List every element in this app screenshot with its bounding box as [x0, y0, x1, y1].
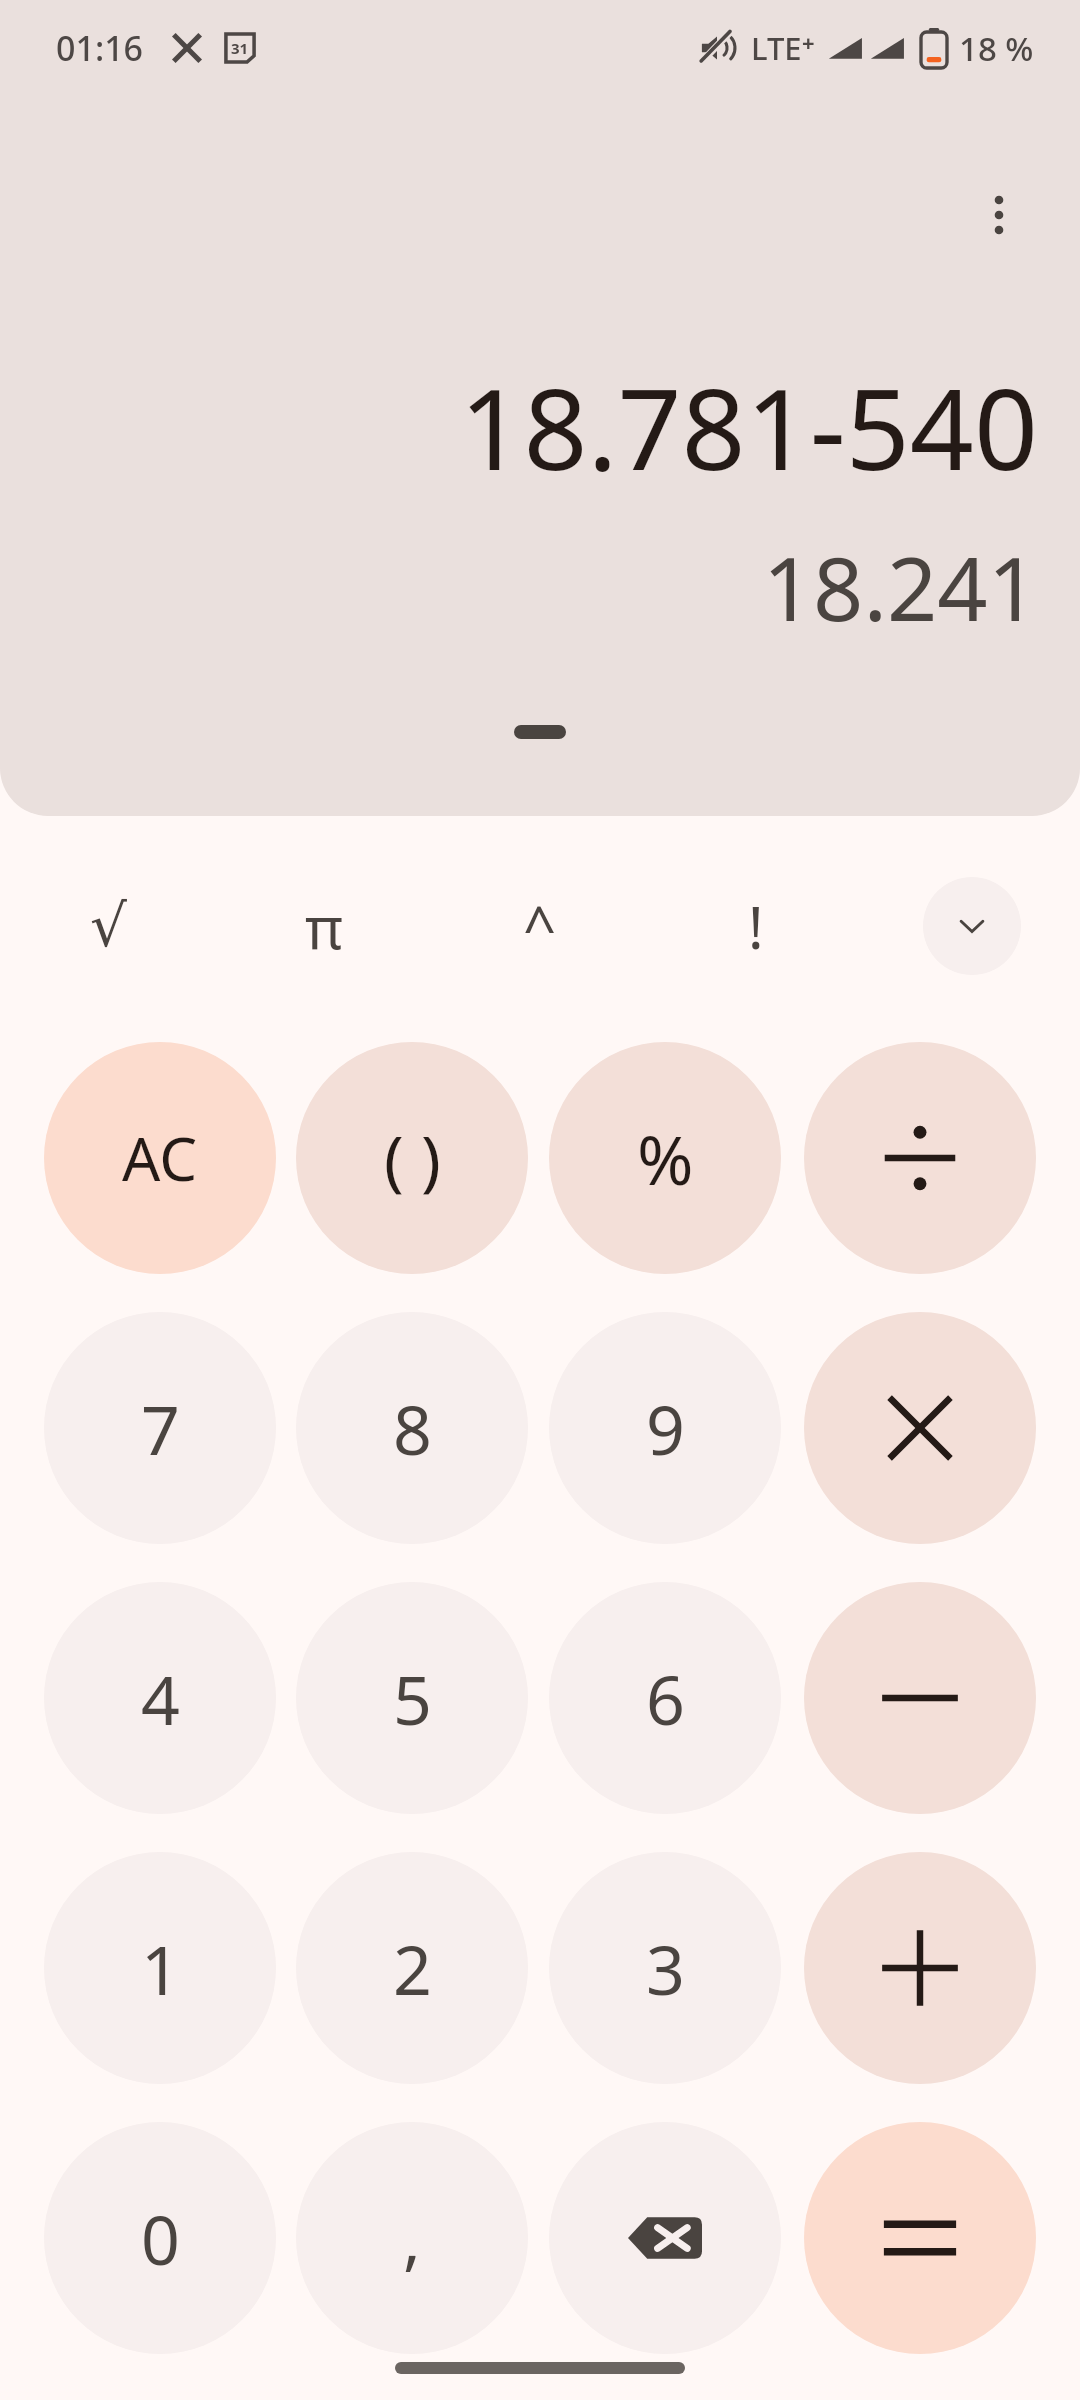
button[interactable]: 2: [296, 1852, 528, 2084]
staticText: 18.241: [762, 527, 1038, 647]
button[interactable]: AC: [44, 1042, 276, 1274]
staticText: 2: [393, 1922, 432, 2015]
staticText: +: [802, 27, 815, 57]
staticText: 0: [141, 2192, 180, 2285]
button[interactable]: More options: [934, 150, 1064, 280]
button[interactable]: 4: [44, 1582, 276, 1814]
staticText: 8: [393, 1382, 432, 1475]
button[interactable]: [804, 1042, 1036, 1274]
staticText: ,: [403, 2193, 421, 2283]
staticText: 3: [646, 1922, 685, 2015]
button[interactable]: 0: [44, 2122, 276, 2354]
button[interactable]: ^: [432, 856, 648, 996]
staticText: 01:16: [56, 25, 144, 71]
button[interactable]: [804, 2122, 1036, 2354]
staticText: LTE: [751, 27, 802, 69]
staticText: 1: [141, 1922, 180, 2015]
button[interactable]: 5: [296, 1582, 528, 1814]
staticText: ^: [523, 887, 557, 966]
button[interactable]: 6: [549, 1582, 781, 1814]
staticText: 7: [141, 1382, 180, 1475]
staticText: 18 %: [959, 26, 1034, 71]
button[interactable]: √: [0, 856, 216, 996]
button[interactable]: ( ): [296, 1042, 528, 1274]
button[interactable]: 9: [549, 1312, 781, 1544]
button[interactable]: [804, 1312, 1036, 1544]
button[interactable]: Expand history: [470, 672, 610, 792]
button[interactable]: [804, 1582, 1036, 1814]
staticText: !: [748, 887, 764, 966]
staticText: %: [637, 1112, 694, 1205]
staticText: π: [305, 887, 343, 966]
staticText: 6: [646, 1652, 685, 1745]
staticText: √: [90, 892, 127, 960]
staticText: AC: [122, 1117, 198, 1199]
staticText: 18.781-540: [459, 350, 1038, 503]
staticText: 9: [646, 1382, 685, 1475]
button[interactable]: 1: [44, 1852, 276, 2084]
button[interactable]: ,: [296, 2122, 528, 2354]
button[interactable]: %: [549, 1042, 781, 1274]
button[interactable]: π: [216, 856, 432, 996]
button[interactable]: [804, 1852, 1036, 2084]
button[interactable]: Show more functions: [923, 877, 1021, 975]
button[interactable]: !: [648, 856, 864, 996]
button[interactable]: Backspace: [549, 2122, 781, 2354]
staticText: 5: [393, 1652, 432, 1745]
button[interactable]: 7: [44, 1312, 276, 1544]
staticText: ( ): [384, 1113, 441, 1203]
button[interactable]: 8: [296, 1312, 528, 1544]
staticText: 31: [231, 38, 249, 58]
staticText: 4: [141, 1652, 180, 1745]
button[interactable]: 3: [549, 1852, 781, 2084]
